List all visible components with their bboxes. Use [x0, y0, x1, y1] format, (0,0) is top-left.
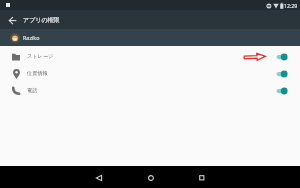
button[interactable]	[4, 12, 20, 28]
button[interactable]	[195, 171, 209, 185]
button[interactable]: Raziko	[0, 29, 300, 46]
button[interactable]	[276, 69, 288, 79]
button[interactable]: 電話	[0, 82, 300, 99]
staticText: 電話	[27, 87, 38, 94]
staticText: 12:29	[284, 2, 298, 9]
button[interactable]	[144, 171, 158, 185]
staticText: Raziko	[23, 34, 40, 41]
button[interactable]	[276, 86, 288, 96]
button[interactable]: 位置情報	[0, 65, 300, 82]
staticText: 位置情報	[27, 70, 48, 77]
button[interactable]: ストレージ	[0, 48, 300, 65]
button[interactable]	[92, 171, 106, 185]
staticText: ストレージ	[27, 53, 54, 60]
button[interactable]	[276, 52, 288, 62]
staticText: アプリの権限	[23, 16, 60, 24]
